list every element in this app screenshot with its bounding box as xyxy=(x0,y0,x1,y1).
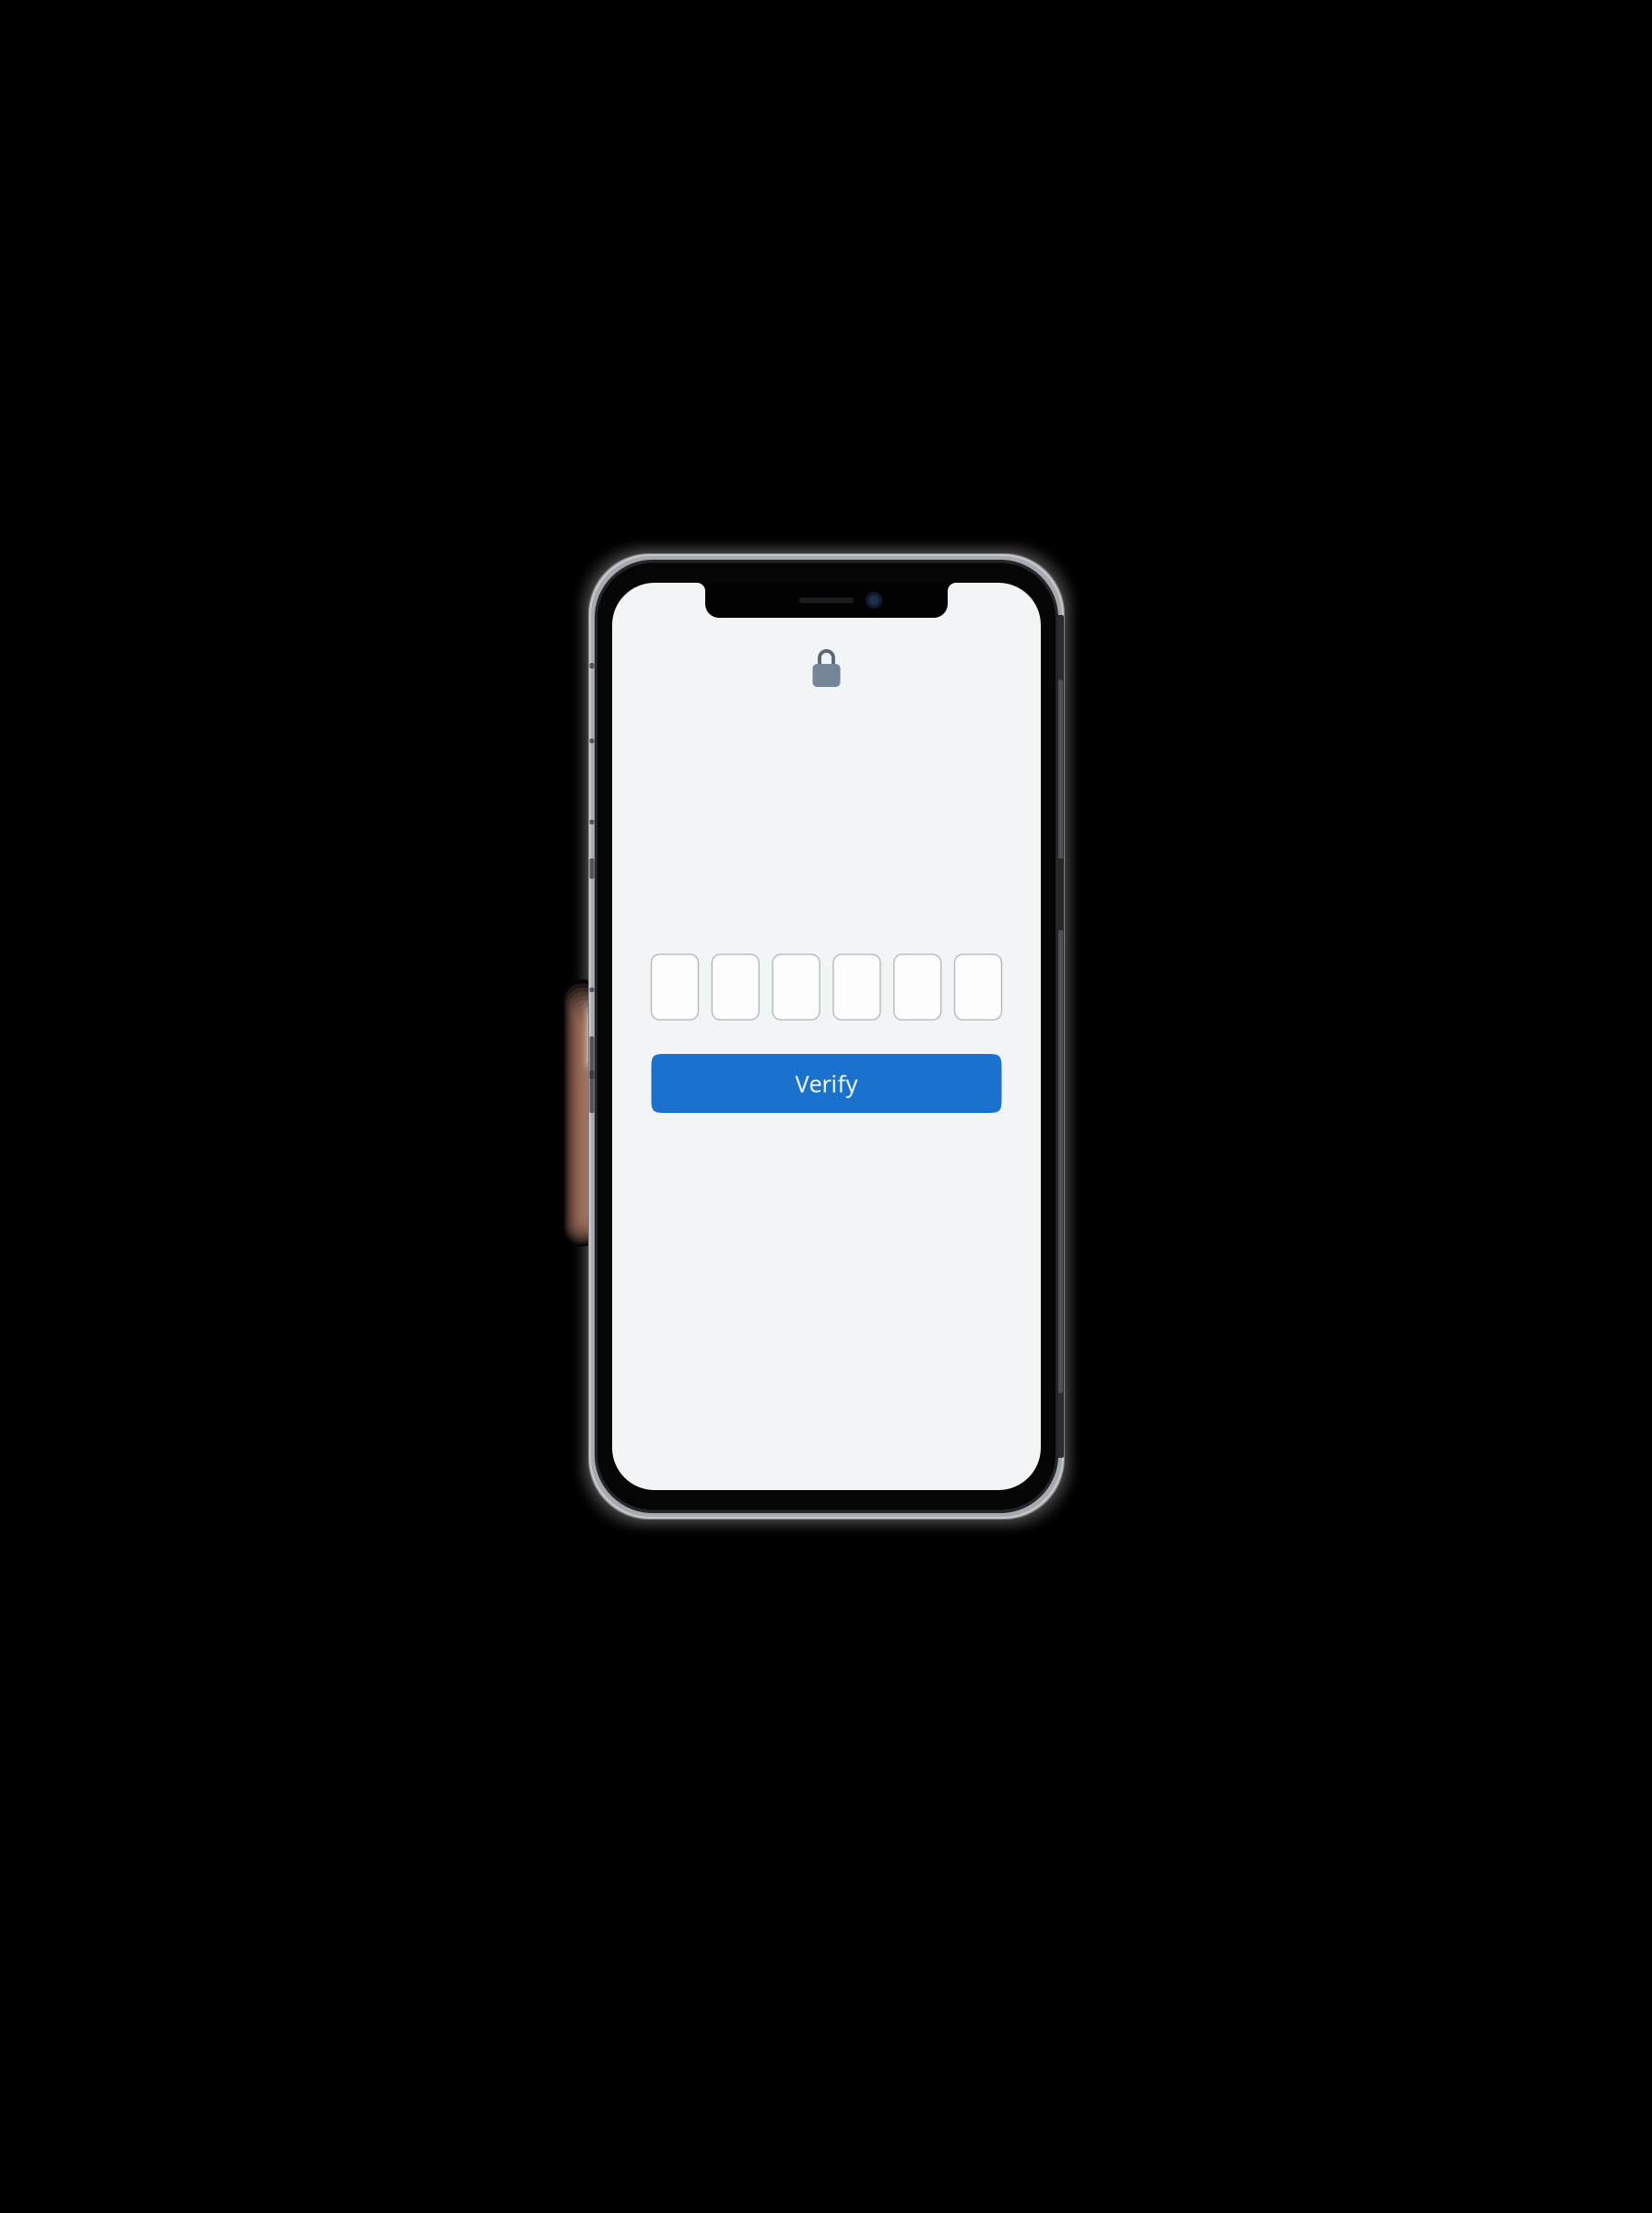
button[interactable]: Verification code digit xyxy=(833,954,880,1020)
button[interactable]: Verify xyxy=(651,1054,1002,1113)
button[interactable]: Verification code digit xyxy=(955,954,1002,1020)
button[interactable]: Verification code digit xyxy=(651,954,698,1020)
button[interactable]: Verification code digit xyxy=(894,954,941,1020)
button[interactable]: Verification code digit xyxy=(712,954,759,1020)
staticText: Verify xyxy=(795,1068,858,1099)
button[interactable]: Verification code digit xyxy=(773,954,820,1020)
